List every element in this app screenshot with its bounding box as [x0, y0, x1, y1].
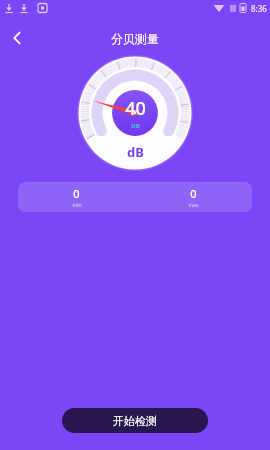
staticText: 40	[125, 96, 146, 121]
staticText: 分贝测量	[111, 31, 159, 46]
staticText: 0	[190, 186, 197, 201]
staticText: 开始检测	[113, 414, 157, 428]
button[interactable]: 0	[18, 182, 252, 212]
button[interactable]: 开始检测	[62, 408, 208, 433]
staticText: 8:36	[251, 3, 267, 14]
staticText: max	[188, 202, 199, 209]
staticText: DB	[131, 122, 140, 130]
button[interactable]: Back	[4, 25, 30, 51]
staticText: 0	[73, 186, 80, 201]
staticText: dB	[127, 143, 144, 161]
staticText: min	[72, 202, 82, 209]
